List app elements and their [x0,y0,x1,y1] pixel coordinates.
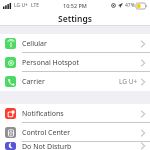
button[interactable]: Personal Hotspot [0,53,150,72]
staticText: Do Not Disturb [22,142,72,150]
staticText: 47% [125,2,135,9]
staticText: Carrier [22,77,45,87]
staticText: Notifications [22,109,64,119]
staticText: Personal Hotspot [22,58,79,68]
staticText: Control Center [22,128,71,138]
staticText: 10:52 PM [63,2,87,9]
staticText: LG U+ [119,77,138,86]
button[interactable]: Cellular [0,34,150,53]
staticText: LG U+ [14,2,28,9]
button[interactable]: Notifications [0,104,150,123]
button[interactable]: Do Not Disturb [0,142,150,150]
button[interactable]: Control Center [0,123,150,142]
button[interactable]: Carrier [0,72,150,91]
staticText: LTE [31,2,40,9]
staticText: Settings [58,13,92,25]
staticText: Cellular [22,39,47,49]
